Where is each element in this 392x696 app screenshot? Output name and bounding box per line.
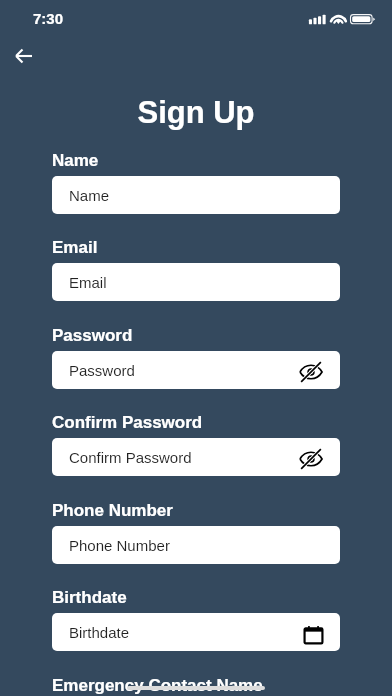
staticText: Confirm Password [52, 413, 203, 432]
staticText: Sign Up [0, 95, 392, 130]
button[interactable]: Toggle password visibility [299, 449, 323, 469]
button[interactable]: Toggle password visibility [299, 362, 323, 382]
staticText: Email [69, 274, 107, 291]
staticText: Email [52, 238, 98, 257]
staticText: 7:30 [33, 10, 64, 27]
button[interactable]: Pick date [304, 625, 323, 644]
button[interactable]: Birthdate [52, 613, 340, 651]
button[interactable]: Phone Number [52, 526, 340, 564]
staticText: Birthdate [52, 588, 127, 607]
button[interactable]: Password [52, 351, 340, 389]
staticText: Emergency Contact Name [52, 676, 263, 695]
staticText: Password [52, 326, 133, 345]
staticText: Phone Number [69, 537, 170, 554]
button[interactable]: Confirm Password [52, 438, 340, 476]
staticText: Password [69, 362, 135, 379]
staticText: Birthdate [69, 624, 130, 641]
staticText: Phone Number [52, 501, 173, 520]
button[interactable]: Back [1, 34, 45, 78]
button[interactable]: Name [52, 176, 340, 214]
staticText: Confirm Password [69, 449, 192, 466]
button[interactable]: Email [52, 263, 340, 301]
staticText: Name [69, 187, 110, 204]
staticText: Name [52, 151, 99, 170]
